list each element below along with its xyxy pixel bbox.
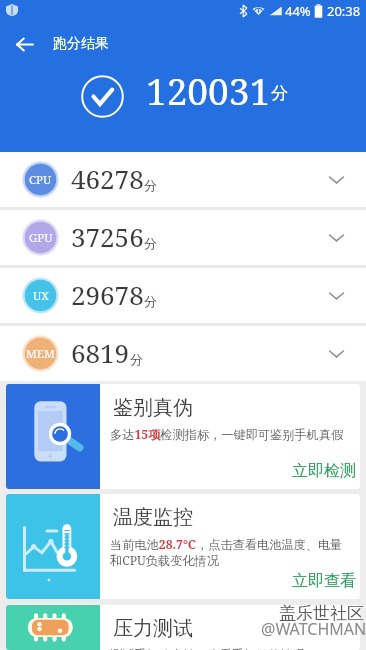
button[interactable]: Expand CPU: [314, 152, 358, 207]
button[interactable]: UX: [0, 268, 366, 323]
staticText: 37256: [71, 219, 144, 254]
staticText: 跑分结果: [53, 35, 109, 53]
staticText: 44%: [285, 2, 311, 20]
staticText: MEM: [26, 346, 55, 362]
staticText: @WATCHMAN: [261, 618, 366, 640]
staticText: 29678: [71, 277, 144, 312]
button[interactable]: 立即检测: [110, 461, 359, 489]
button[interactable]: Back: [0, 22, 48, 66]
staticText: UX: [33, 288, 49, 304]
staticText: 多达15项检测指标，一键即可鉴别手机真假: [110, 426, 344, 443]
staticText: 分: [271, 83, 288, 104]
staticText: 6819: [71, 335, 130, 370]
button[interactable]: 温度监控: [6, 494, 360, 599]
staticText: 立即检测: [292, 461, 356, 481]
staticText: CPU: [29, 172, 52, 188]
staticText: 分: [144, 293, 157, 309]
button[interactable]: Expand MEM: [314, 326, 358, 381]
button[interactable]: Expand GPU: [314, 210, 358, 265]
button[interactable]: GPU: [0, 210, 366, 265]
staticText: 120031: [146, 65, 271, 109]
staticText: 温度监控: [113, 505, 193, 530]
staticText: 压力测试: [113, 616, 193, 641]
staticText: 分: [144, 177, 157, 193]
staticText: 当前电池28.7°C，点击查看电池温度、电量 和CPU负载变化情况: [110, 536, 343, 568]
button[interactable]: CPU: [0, 152, 366, 207]
button[interactable]: 压力测试: [6, 605, 360, 650]
button[interactable]: Expand UX: [314, 268, 358, 323]
staticText: 分: [144, 235, 157, 251]
staticText: 鉴别真伪: [113, 395, 193, 420]
staticText: 测试手机稳定性，查看手机散热情况: [110, 647, 305, 650]
staticText: 20:38: [327, 2, 361, 20]
staticText: 分: [130, 351, 143, 367]
staticText: 盖乐世社区: [279, 603, 364, 624]
button[interactable]: 立即查看: [110, 571, 359, 599]
button[interactable]: 鉴别真伪: [6, 384, 360, 489]
button[interactable]: MEM: [0, 326, 366, 381]
staticText: GPU: [29, 230, 53, 246]
staticText: 46278: [71, 161, 144, 196]
staticText: 立即查看: [292, 571, 356, 591]
